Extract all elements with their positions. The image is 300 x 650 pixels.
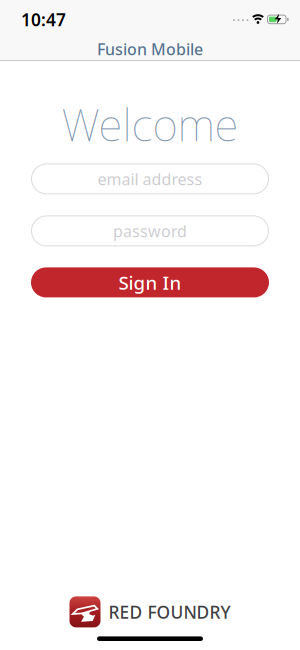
staticText: Welcome <box>61 95 238 153</box>
staticText: Sign In <box>118 270 181 295</box>
staticText: 10:47 <box>21 8 66 31</box>
staticText: email address <box>97 168 202 189</box>
button[interactable]: password <box>31 215 269 246</box>
staticText: Fusion Mobile <box>97 38 203 60</box>
button[interactable]: email address <box>31 163 269 194</box>
staticText: RED FOUNDRY <box>108 600 230 623</box>
button[interactable]: Sign In <box>31 267 269 297</box>
staticText: password <box>113 220 187 241</box>
